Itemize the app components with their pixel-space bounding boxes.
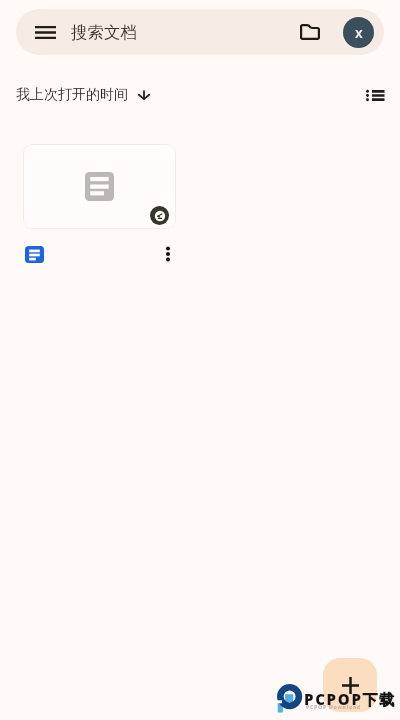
staticText: 我上次打开的时间 [16,86,128,104]
staticText: PCPOP Download [306,703,361,710]
button[interactable]: List view [359,79,391,111]
button[interactable]: Google Docs [25,246,44,263]
staticText: 搜索文档 [71,22,137,43]
button[interactable]: Folders [293,15,327,49]
button[interactable] [23,144,176,229]
button[interactable]: Account [343,17,374,48]
button[interactable]: New document [323,658,377,712]
button[interactable]: More options [155,242,181,266]
staticText: PCPOP下载 [304,689,397,709]
button[interactable]: Menu [16,9,384,55]
button[interactable]: 我上次打开的时间 [16,83,150,107]
button[interactable]: Menu [28,15,62,49]
staticText: x [355,23,363,42]
